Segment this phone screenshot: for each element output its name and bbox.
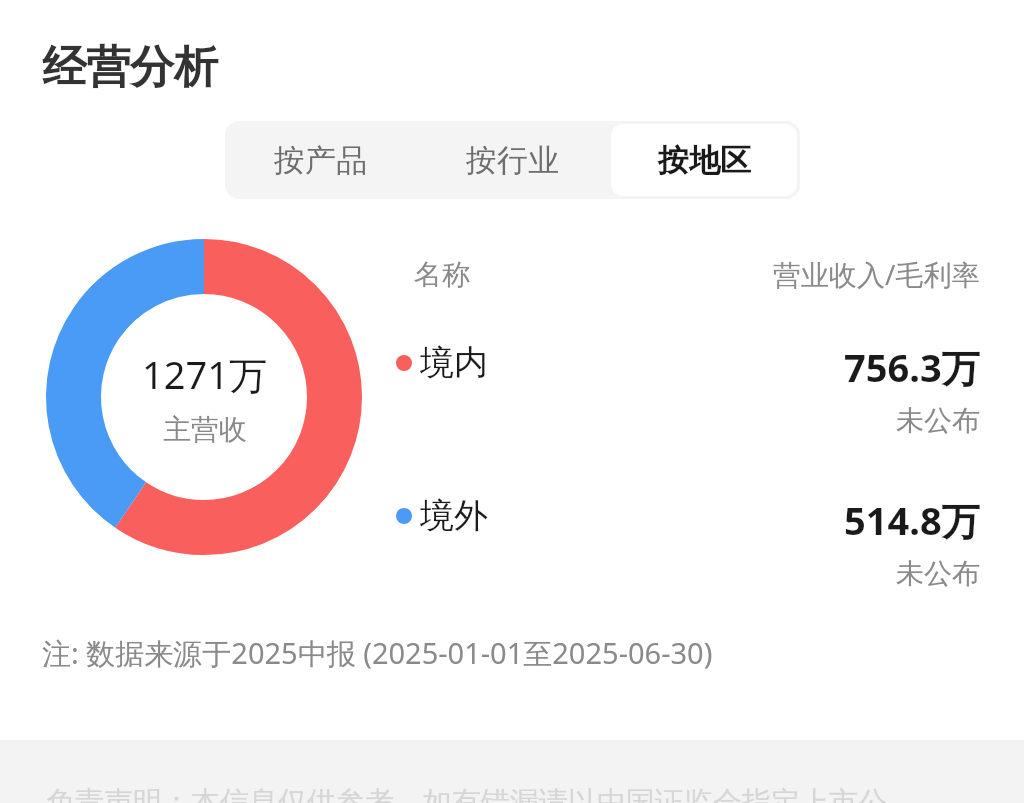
staticText: 514.8万	[844, 494, 980, 546]
button[interactable]: 境内	[396, 341, 980, 438]
button[interactable]: 境外	[396, 494, 980, 591]
staticText: 未公布	[896, 403, 980, 438]
staticText: 756.3万	[844, 341, 980, 393]
button[interactable]: 按产品	[228, 124, 413, 196]
staticText: 名称	[414, 257, 470, 292]
staticText: 营业收入/毛利率	[773, 255, 980, 293]
staticText: 注: 数据来源于2025中报 (2025-01-01至2025-06-30)	[42, 633, 713, 673]
staticText: 境外	[420, 494, 488, 537]
staticText: 境内	[420, 341, 488, 384]
staticText: 未公布	[896, 556, 980, 591]
staticText: 主营收	[163, 412, 247, 447]
staticText: 按地区	[658, 141, 751, 180]
staticText: 按行业	[466, 141, 559, 180]
staticText: 经营分析	[42, 40, 218, 95]
staticText: 1271万	[142, 348, 267, 400]
button[interactable]: 按地区	[611, 124, 797, 196]
staticText: 按产品	[274, 141, 367, 180]
staticText: 免责声明：本信息仅供参考，如有错漏请以中国证监会指定上市公	[46, 784, 887, 803]
button[interactable]: 按行业	[419, 124, 605, 196]
